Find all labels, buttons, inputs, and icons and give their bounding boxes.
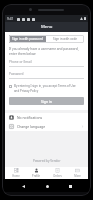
staticText: By entering I sign in, you accept Terms … bbox=[14, 84, 76, 88]
button[interactable]: Sign in with password bbox=[9, 35, 46, 43]
staticText: No notifications bbox=[17, 115, 84, 120]
staticText: Change language bbox=[17, 124, 81, 129]
button[interactable]: Home bbox=[44, 183, 50, 189]
button[interactable]: Sign in bbox=[9, 97, 84, 105]
staticText: Home bbox=[12, 174, 20, 178]
staticText: Sign in bbox=[41, 99, 52, 104]
button[interactable]: Recent apps bbox=[67, 183, 73, 189]
staticText: Profile bbox=[32, 174, 40, 178]
staticText: Sign in with code bbox=[53, 37, 77, 41]
staticText: Menu bbox=[41, 24, 53, 30]
staticText: If you already have a username and passw… bbox=[9, 47, 84, 51]
button[interactable]: Sign in with code bbox=[46, 35, 84, 43]
staticText: Password bbox=[9, 72, 24, 76]
button[interactable]: Notifications bbox=[5, 113, 88, 122]
staticText: Phone or Email bbox=[9, 60, 32, 64]
staticText: enter them below bbox=[9, 52, 36, 56]
staticText: Powered by Vendor bbox=[33, 159, 61, 163]
staticText: 9:41 bbox=[7, 17, 14, 21]
other: Language bbox=[9, 124, 14, 129]
button[interactable]: Back bbox=[20, 183, 26, 189]
staticText: and Privacy Policy bbox=[14, 89, 39, 93]
button[interactable]: More bbox=[68, 167, 86, 179]
button[interactable]: By entering I sign in, you accept Terms … bbox=[9, 84, 84, 93]
button[interactable]: Profile bbox=[27, 167, 45, 179]
button[interactable]: Language bbox=[5, 122, 88, 131]
staticText: More bbox=[74, 174, 81, 178]
staticText: Orders bbox=[53, 174, 62, 178]
button[interactable]: Home bbox=[7, 167, 25, 179]
button[interactable]: Orders bbox=[48, 167, 66, 179]
other: Notifications bbox=[9, 115, 14, 120]
staticText: Sign in with password bbox=[12, 37, 43, 41]
